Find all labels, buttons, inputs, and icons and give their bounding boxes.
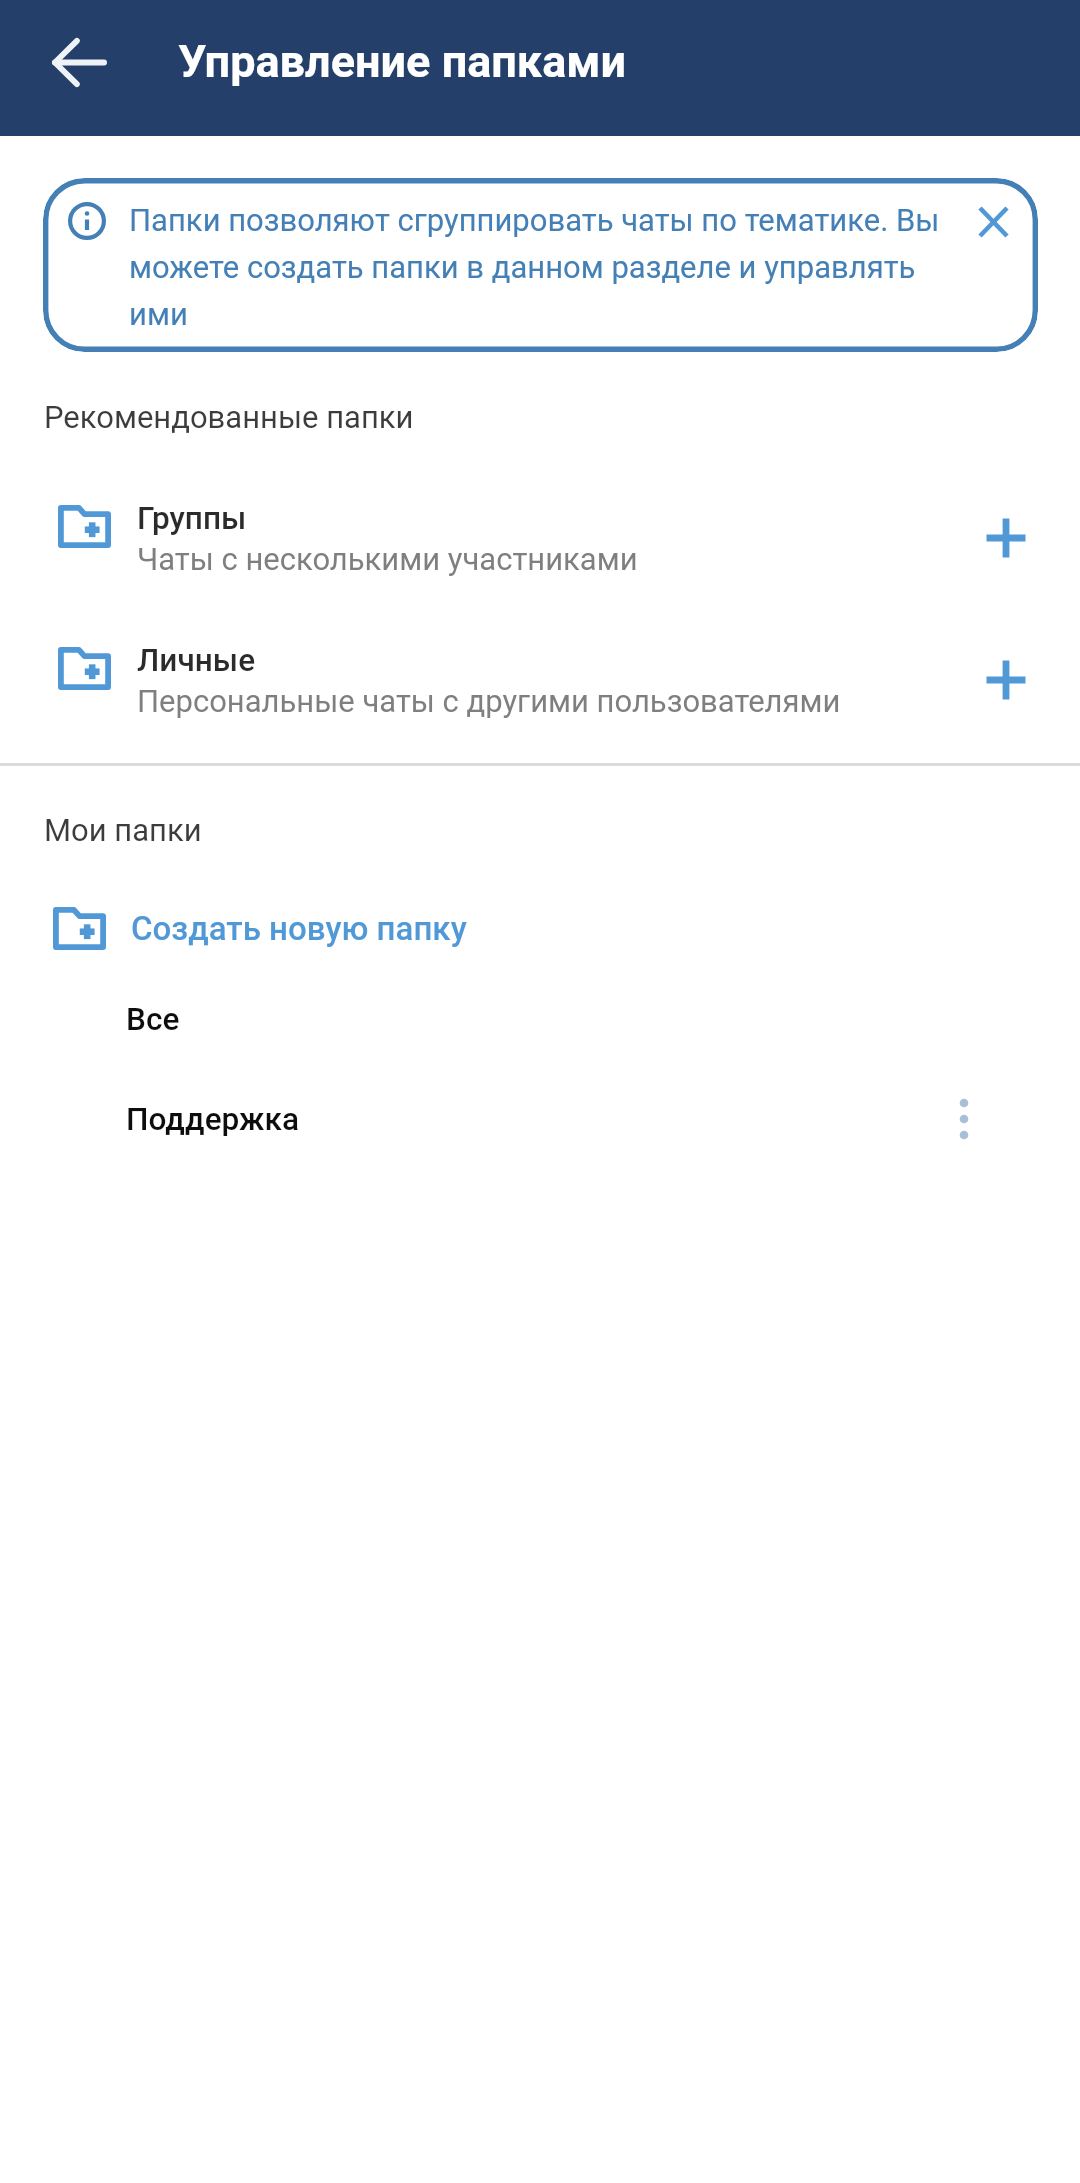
staticText: Все [126, 1001, 180, 1038]
staticText: Поддержка [126, 1101, 300, 1138]
staticText: Управление папками [178, 35, 627, 88]
staticText: Мои папки [44, 812, 202, 848]
button[interactable]: Назад [29, 12, 129, 112]
button[interactable]: Группы [0, 477, 1080, 599]
staticText: Группы [137, 500, 247, 537]
button[interactable]: Папки позволяют сгруппировать чаты по те… [43, 178, 1038, 352]
staticText: Создать новую папку [131, 909, 467, 948]
button[interactable]: Все [0, 969, 1080, 1069]
button[interactable]: Закрыть [962, 191, 1024, 253]
staticText: Чаты с несколькими участниками [137, 541, 638, 577]
button[interactable]: Поддержка [0, 1069, 1080, 1169]
button[interactable]: Добавить папку [956, 630, 1056, 730]
button[interactable]: Создать новую папку [0, 885, 1080, 971]
button[interactable]: Личные [0, 619, 1080, 741]
staticText: Папки позволяют сгруппировать чаты по те… [129, 194, 989, 335]
staticText: Персональные чаты с другими пользователя… [137, 683, 841, 719]
staticText: Личные [137, 642, 256, 679]
button[interactable]: Ещё [916, 1071, 1012, 1167]
button[interactable]: Добавить папку [956, 488, 1056, 588]
staticText: Рекомендованные папки [44, 399, 414, 435]
